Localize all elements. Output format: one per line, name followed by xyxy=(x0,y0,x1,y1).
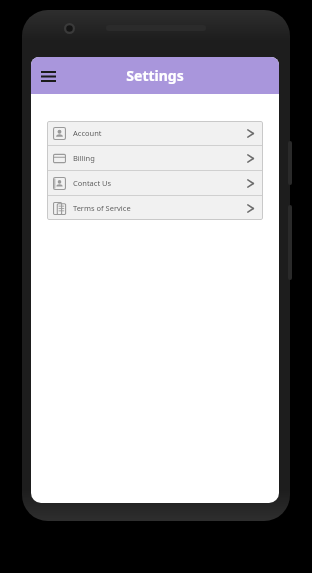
staticText: Contact Us xyxy=(73,178,246,188)
button[interactable]: Terms of Service xyxy=(47,196,263,220)
staticText: Billing xyxy=(73,153,246,163)
button[interactable]: Account xyxy=(47,121,263,145)
button[interactable]: Billing xyxy=(47,146,263,170)
staticText: Terms of Service xyxy=(73,203,246,213)
button[interactable]: Contact Us xyxy=(47,171,263,195)
staticText: Settings xyxy=(126,66,184,85)
staticText: Account xyxy=(73,128,246,138)
button[interactable]: Open navigation menu xyxy=(34,62,62,90)
